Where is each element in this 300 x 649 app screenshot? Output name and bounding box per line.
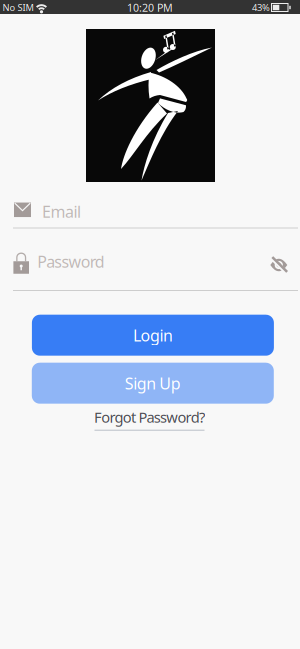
button[interactable]: Email bbox=[13, 200, 298, 228]
staticText: Login bbox=[133, 325, 173, 346]
button[interactable]: Forgot Password? bbox=[84, 409, 214, 431]
staticText: Sign Up bbox=[125, 373, 181, 394]
button[interactable]: Show password bbox=[270, 256, 288, 274]
staticText: 43% bbox=[252, 1, 270, 14]
button[interactable]: Login bbox=[32, 315, 274, 356]
staticText: 10:20 PM bbox=[127, 0, 173, 15]
staticText: Password bbox=[37, 251, 105, 272]
staticText: Forgot Password? bbox=[94, 407, 205, 427]
button[interactable]: Sign Up bbox=[32, 363, 274, 404]
staticText: No SIM bbox=[2, 1, 33, 14]
staticText: Email bbox=[42, 201, 81, 222]
button[interactable]: Password bbox=[13, 248, 298, 291]
